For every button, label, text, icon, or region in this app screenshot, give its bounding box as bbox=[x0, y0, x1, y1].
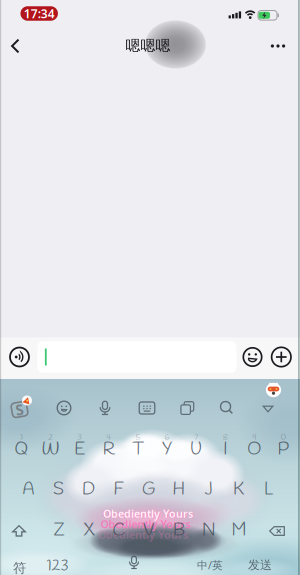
staticText: 1 bbox=[20, 432, 23, 443]
staticText: 2 bbox=[48, 432, 53, 443]
button[interactable] bbox=[128, 556, 140, 569]
button[interactable]: C bbox=[112, 519, 125, 542]
button[interactable]: D bbox=[82, 478, 95, 501]
button[interactable]: K bbox=[233, 478, 244, 501]
staticText: 8 bbox=[223, 432, 228, 443]
staticText: 4 bbox=[106, 432, 111, 443]
button[interactable] bbox=[180, 401, 194, 415]
staticText: 3 bbox=[77, 432, 82, 443]
staticText: Obediently Yours bbox=[100, 517, 190, 531]
button[interactable]: B bbox=[173, 519, 185, 542]
button[interactable]: 123 bbox=[46, 556, 68, 575]
button[interactable] bbox=[139, 402, 155, 414]
staticText: T bbox=[132, 438, 143, 461]
button[interactable]: M bbox=[231, 519, 246, 542]
staticText: S bbox=[53, 478, 64, 501]
staticText: Obediently Yours bbox=[103, 506, 193, 521]
button[interactable]: H bbox=[172, 478, 184, 501]
staticText: Q bbox=[14, 438, 28, 461]
staticText: 5 bbox=[135, 432, 140, 443]
button[interactable]: G bbox=[142, 478, 155, 501]
button[interactable]: 中/英 bbox=[197, 558, 223, 572]
staticText: 发送 bbox=[248, 558, 272, 572]
button[interactable]: 发送 bbox=[248, 558, 272, 572]
button[interactable]: Y bbox=[162, 438, 172, 461]
button[interactable]: N bbox=[202, 519, 216, 542]
button[interactable]: Z bbox=[53, 519, 64, 542]
button[interactable] bbox=[272, 347, 291, 367]
staticText: G bbox=[142, 478, 155, 501]
button[interactable] bbox=[10, 347, 29, 366]
button[interactable]: F bbox=[113, 478, 123, 501]
staticText: F bbox=[113, 478, 123, 501]
button[interactable]: P bbox=[277, 438, 289, 461]
button[interactable]: V bbox=[143, 519, 155, 542]
button[interactable]: T bbox=[132, 438, 143, 461]
staticText: C bbox=[112, 519, 125, 542]
staticText: O bbox=[247, 438, 261, 461]
button[interactable]: U bbox=[190, 438, 202, 461]
staticText: V bbox=[143, 519, 155, 542]
button[interactable] bbox=[243, 348, 262, 366]
staticText: 6 bbox=[164, 432, 169, 443]
button[interactable]: O bbox=[247, 438, 261, 461]
staticText: 123 bbox=[46, 556, 68, 575]
button[interactable] bbox=[37, 341, 236, 373]
staticText: U bbox=[190, 438, 202, 461]
button[interactable]: Q bbox=[14, 438, 28, 461]
staticText: L bbox=[264, 478, 273, 501]
staticText: Obediently Yours bbox=[102, 506, 193, 521]
staticText: R bbox=[103, 438, 115, 461]
staticText: N bbox=[202, 519, 216, 542]
staticText: B bbox=[173, 519, 185, 542]
button[interactable]: 符 bbox=[13, 560, 26, 575]
button[interactable] bbox=[269, 526, 285, 536]
staticText: I bbox=[223, 438, 227, 461]
staticText: 嗯嗯嗯 bbox=[125, 36, 170, 54]
button[interactable] bbox=[271, 44, 285, 48]
button[interactable]: R bbox=[103, 438, 115, 461]
staticText: Z bbox=[53, 519, 64, 542]
button[interactable]: E bbox=[74, 438, 85, 461]
staticText: 7 bbox=[194, 432, 198, 443]
staticText: 中/英 bbox=[197, 558, 223, 572]
button[interactable] bbox=[11, 39, 19, 53]
staticText: Obediently Yours bbox=[103, 507, 194, 521]
staticText: D bbox=[82, 478, 95, 501]
staticText: 0 bbox=[280, 432, 286, 443]
button[interactable] bbox=[98, 401, 112, 415]
button[interactable] bbox=[266, 382, 281, 397]
staticText: A bbox=[22, 478, 34, 501]
button[interactable]: J bbox=[204, 478, 212, 501]
staticText: 符 bbox=[13, 560, 26, 575]
button[interactable] bbox=[262, 405, 273, 412]
button[interactable] bbox=[57, 401, 71, 415]
staticText: Y bbox=[162, 438, 172, 461]
staticText: H bbox=[172, 478, 184, 501]
button[interactable]: I bbox=[223, 438, 227, 461]
button[interactable]: L bbox=[264, 478, 273, 501]
staticText: K bbox=[233, 478, 244, 501]
staticText: 17:34 bbox=[24, 5, 55, 21]
button[interactable]: S bbox=[9, 399, 29, 419]
staticText: Obediently Yours bbox=[98, 527, 188, 542]
staticText: P bbox=[277, 438, 289, 461]
button[interactable] bbox=[12, 525, 26, 537]
button[interactable]: A bbox=[22, 478, 34, 501]
button[interactable]: S bbox=[53, 478, 64, 501]
staticText: 9 bbox=[252, 432, 256, 443]
staticText: M bbox=[231, 519, 246, 542]
button[interactable]: X bbox=[83, 519, 94, 542]
staticText: E bbox=[74, 438, 85, 461]
button[interactable]: W bbox=[42, 438, 60, 461]
staticText: S bbox=[15, 400, 23, 419]
staticText: W bbox=[42, 438, 60, 461]
staticText: J bbox=[204, 478, 212, 501]
staticText: X bbox=[83, 519, 94, 542]
button[interactable]: 17:34 bbox=[20, 5, 58, 21]
button[interactable] bbox=[220, 401, 233, 414]
